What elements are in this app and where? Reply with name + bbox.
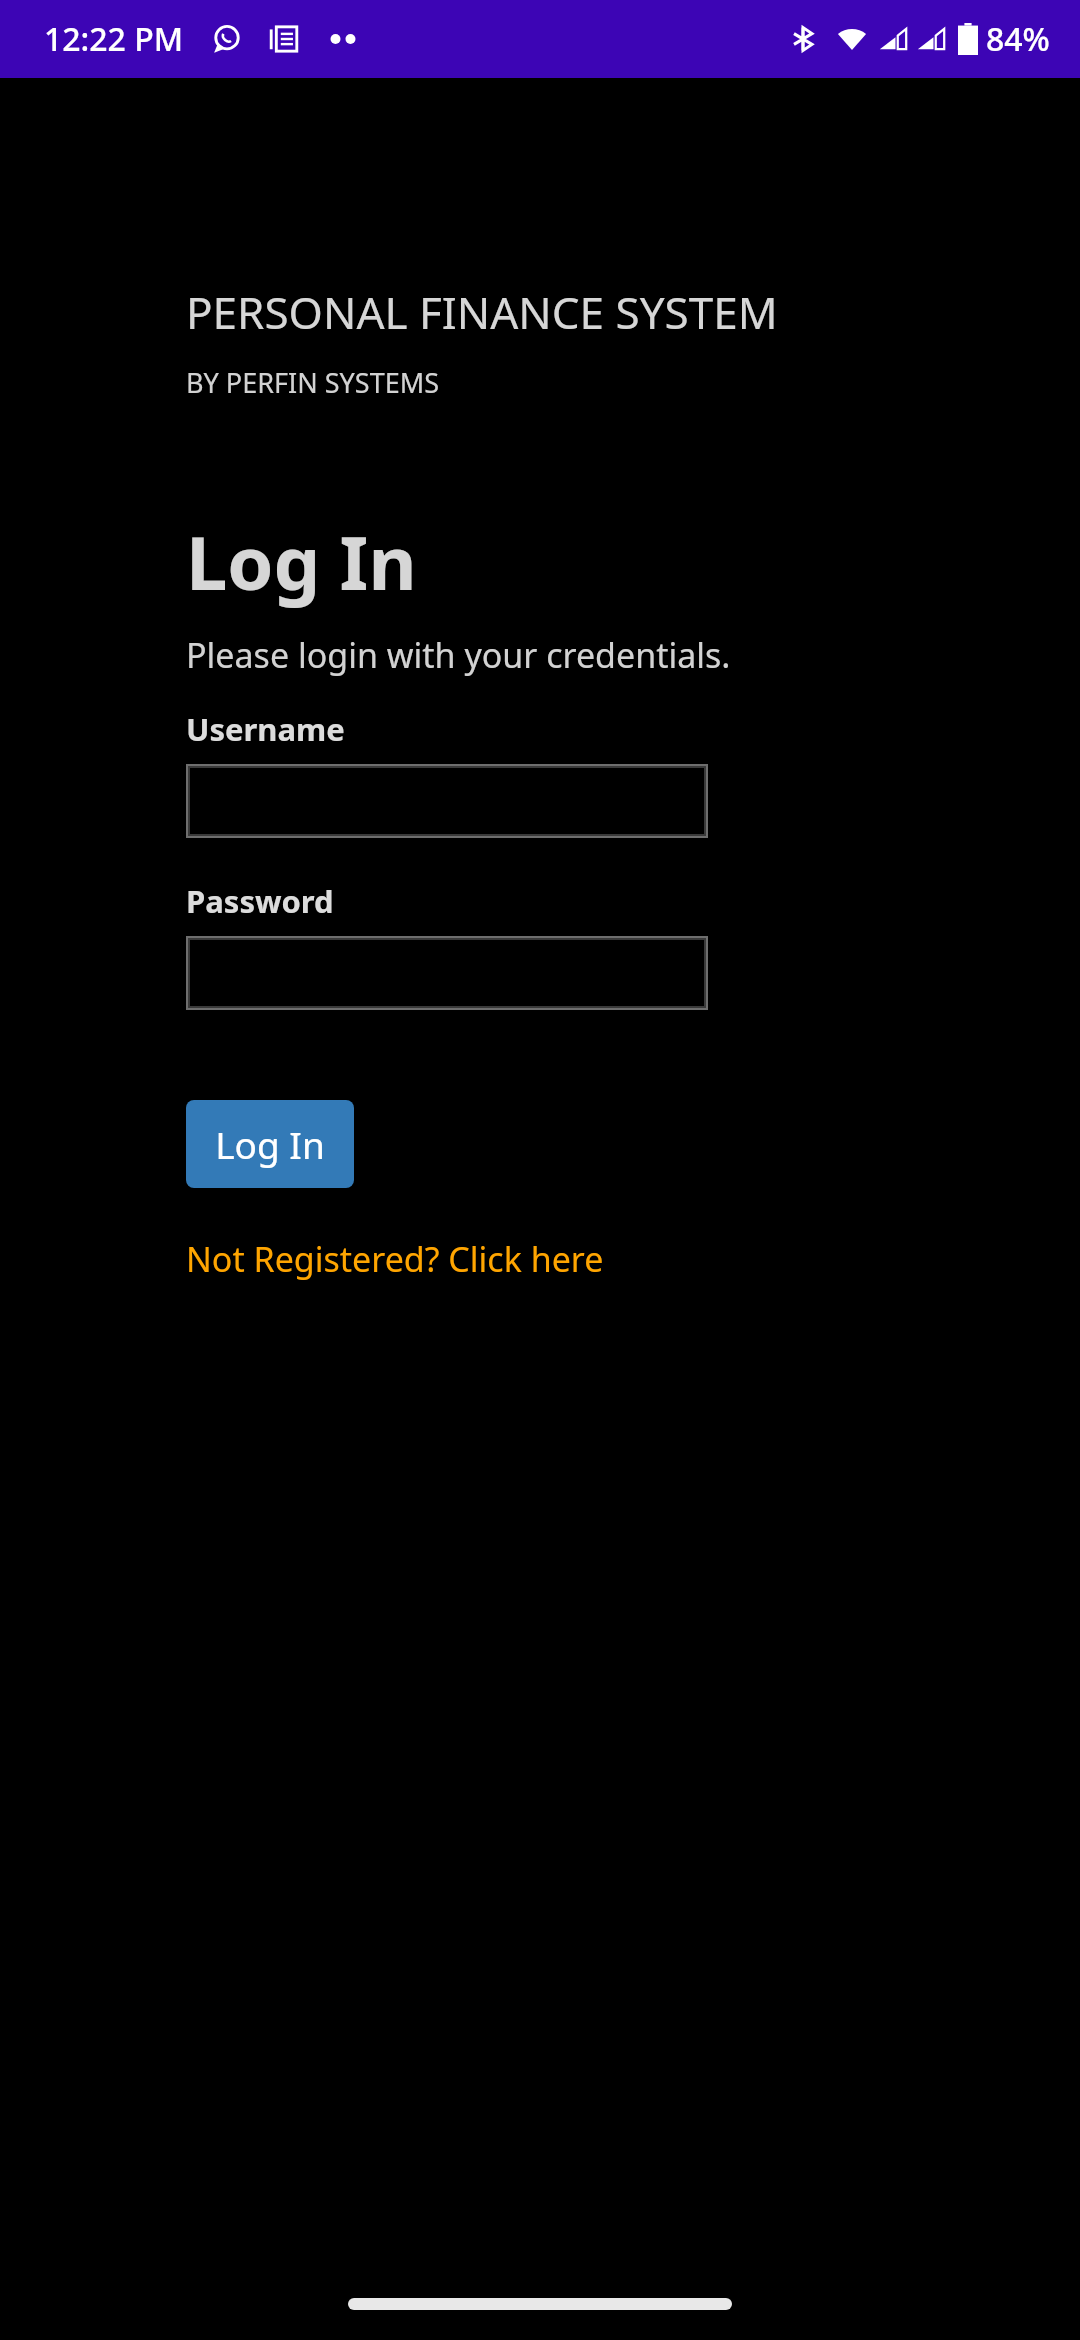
staticText: PERSONAL FINANCE SYSTEM	[186, 282, 778, 342]
button[interactable]: Password input	[186, 936, 708, 1010]
staticText: Not Registered? Click here	[186, 1236, 604, 1282]
staticText: 84%	[986, 17, 1050, 61]
button[interactable]: Not Registered? Click here	[186, 1236, 604, 1282]
staticText: Log In	[186, 511, 417, 612]
staticText: 12:22 PM	[44, 17, 184, 61]
staticText: Log In	[215, 1119, 325, 1169]
staticText: Please login with your credentials.	[186, 632, 731, 678]
button[interactable]: Username input	[186, 764, 708, 838]
staticText: Username	[186, 708, 345, 750]
button[interactable]: Log In	[186, 1100, 354, 1188]
staticText: BY PERFIN SYSTEMS	[186, 364, 439, 401]
staticText: Password	[186, 880, 334, 922]
